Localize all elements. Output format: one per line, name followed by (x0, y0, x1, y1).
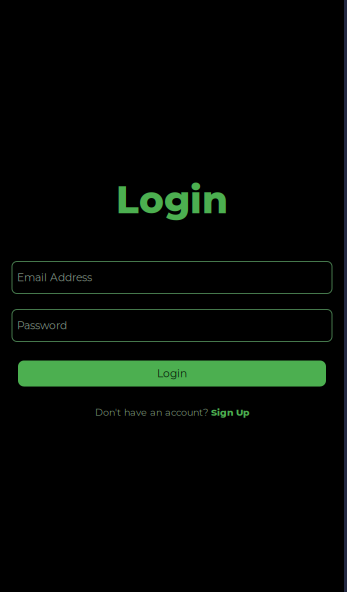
staticText: Don't have an account? (95, 406, 208, 418)
staticText: Login (157, 367, 187, 380)
button[interactable]: Login (18, 360, 326, 386)
staticText: Sign Up (211, 407, 249, 418)
staticText: Login (116, 177, 228, 222)
staticText: Email Address (17, 271, 92, 284)
button[interactable]: Don't have an account? (95, 406, 249, 418)
staticText: Password (17, 319, 67, 332)
